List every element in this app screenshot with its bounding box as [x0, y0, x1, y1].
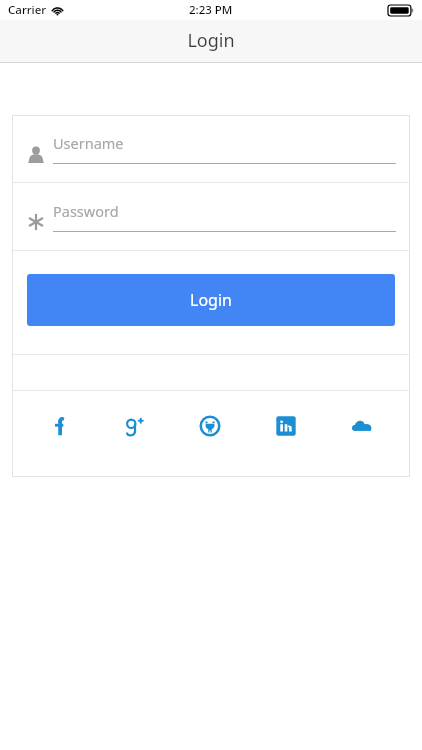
staticText: 2:23 PM — [189, 2, 233, 18]
button[interactable]: Facebook — [22, 411, 97, 441]
button[interactable]: Login — [27, 274, 395, 326]
button[interactable]: Google Plus — [97, 411, 172, 441]
button[interactable]: Password — [12, 183, 410, 250]
button[interactable]: GitHub — [172, 411, 248, 441]
button[interactable]: LinkedIn — [248, 411, 324, 441]
button[interactable]: Cloud — [324, 411, 400, 441]
staticText: Carrier — [8, 2, 47, 18]
button[interactable]: Username — [12, 115, 410, 182]
staticText: Login — [190, 289, 232, 311]
staticText: Password — [53, 201, 119, 221]
staticText: Username — [53, 133, 124, 153]
staticText: Login — [187, 28, 235, 53]
